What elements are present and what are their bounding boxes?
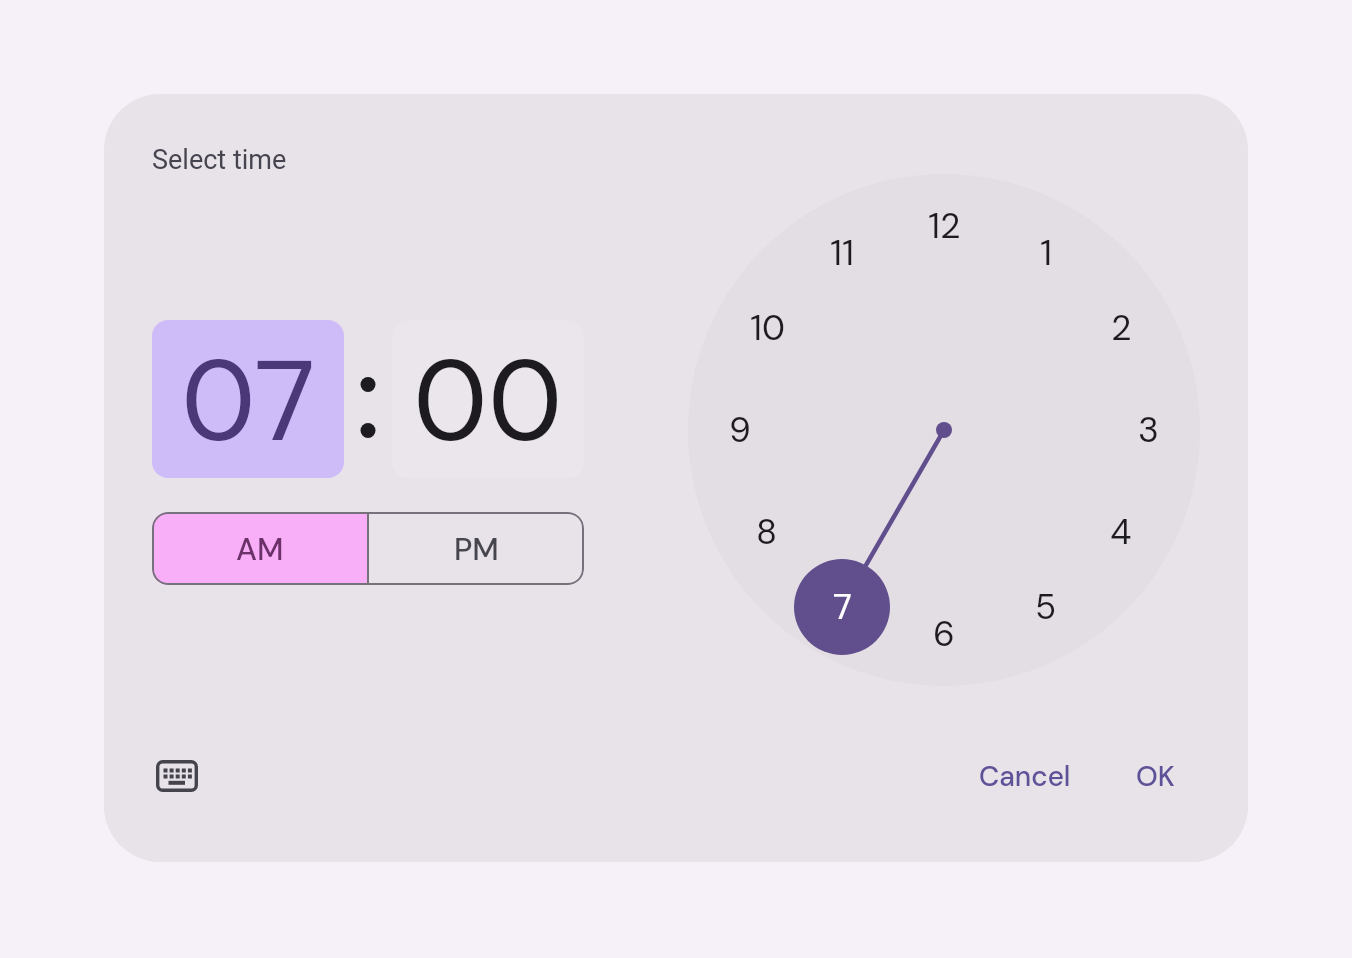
- staticText: 00: [413, 327, 563, 475]
- button[interactable]: 2: [1093, 300, 1149, 356]
- staticText: 4: [1110, 509, 1132, 555]
- button[interactable]: 1: [1018, 225, 1074, 281]
- staticText: 11: [830, 230, 854, 276]
- button[interactable]: 00: [392, 320, 584, 478]
- button[interactable]: Cancel: [970, 744, 1080, 808]
- staticText: 9: [729, 407, 751, 453]
- button[interactable]: 8: [739, 504, 795, 560]
- staticText: 10: [750, 305, 785, 351]
- button[interactable]: 11: [814, 225, 870, 281]
- staticText: 07: [181, 327, 316, 475]
- button[interactable]: [132, 731, 222, 821]
- staticText: AM: [236, 529, 284, 569]
- staticText: 2: [1111, 305, 1132, 351]
- staticText: 6: [933, 611, 955, 657]
- button[interactable]: 07: [152, 320, 344, 478]
- staticText: 7: [833, 584, 852, 630]
- staticText: 5: [1035, 584, 1057, 630]
- button[interactable]: 12: [916, 198, 972, 254]
- staticText: OK: [1136, 758, 1175, 794]
- staticText: 1: [1040, 230, 1052, 276]
- staticText: Cancel: [979, 758, 1071, 794]
- button[interactable]: OK: [1115, 744, 1195, 808]
- button[interactable]: 6: [916, 606, 972, 662]
- button[interactable]: 9: [712, 402, 768, 458]
- button[interactable]: 4: [1093, 504, 1149, 560]
- button[interactable]: 5: [1018, 579, 1074, 635]
- button[interactable]: 7: [794, 559, 890, 655]
- staticText: 8: [756, 509, 778, 555]
- staticText: 3: [1138, 407, 1159, 453]
- staticText: Select time: [152, 144, 287, 176]
- button[interactable]: AM: [152, 512, 368, 585]
- button[interactable]: 3: [1120, 402, 1176, 458]
- button[interactable]: 10: [739, 300, 795, 356]
- staticText: 12: [928, 203, 961, 249]
- button[interactable]: PM: [368, 512, 584, 585]
- staticText: PM: [454, 529, 499, 569]
